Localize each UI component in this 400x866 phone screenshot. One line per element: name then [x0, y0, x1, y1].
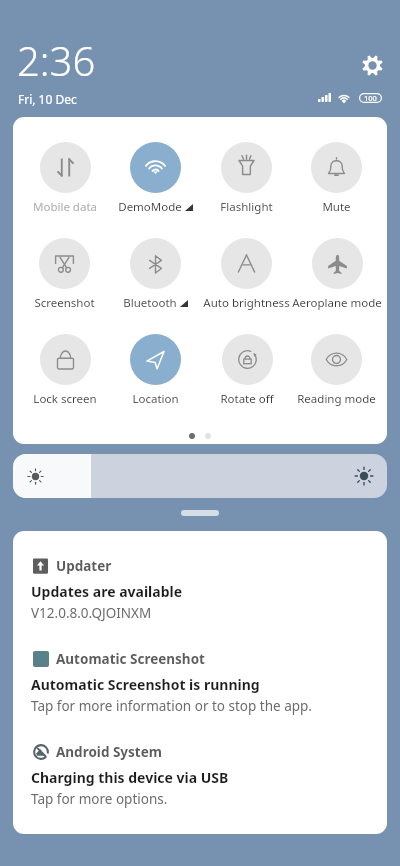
staticText: Mute: [322, 199, 351, 215]
staticText: Aeroplane mode: [292, 295, 382, 311]
button[interactable]: Mobile data: [33, 142, 97, 215]
staticText: Mobile data: [33, 199, 97, 215]
button[interactable]: Settings: [358, 51, 386, 79]
button[interactable]: DemoMode: [118, 142, 193, 215]
staticText: Bluetooth: [123, 295, 177, 311]
button[interactable]: Updater: [31, 557, 387, 622]
button[interactable]: Auto brightness: [203, 238, 290, 311]
button[interactable]: Bluetooth: [123, 238, 188, 311]
staticText: 2:36: [17, 33, 96, 87]
button[interactable]: Flashlight: [220, 142, 273, 215]
staticText: Rotate off: [220, 391, 274, 407]
staticText: Flashlight: [220, 199, 273, 215]
button[interactable]: Android System: [31, 743, 387, 808]
staticText: Android System: [56, 743, 162, 761]
staticText: 100: [364, 93, 377, 103]
button[interactable]: Location: [130, 334, 181, 407]
staticText: Lock screen: [33, 391, 97, 407]
staticText: Tap for more information or to stop the …: [31, 697, 312, 715]
staticText: Tap for more options.: [31, 790, 168, 808]
staticText: Charging this device via USB: [31, 768, 229, 787]
staticText: Automatic Screenshot is running: [31, 675, 260, 694]
button[interactable]: Lock screen: [33, 334, 97, 407]
staticText: V12.0.8.0.QJOINXM: [31, 604, 152, 622]
button[interactable]: Mute: [311, 142, 362, 215]
staticText: Updater: [56, 557, 112, 575]
button[interactable]: Automatic Screenshot: [31, 650, 387, 715]
staticText: Updates are available: [31, 582, 183, 601]
staticText: Fri, 10 Dec: [18, 91, 77, 107]
button[interactable]: Screenshot: [34, 238, 95, 311]
staticText: Automatic Screenshot: [56, 650, 205, 668]
staticText: Screenshot: [34, 295, 95, 311]
staticText: Auto brightness: [203, 295, 290, 311]
staticText: DemoMode: [118, 199, 182, 215]
staticText: Location: [132, 391, 179, 407]
button[interactable]: Reading mode: [297, 334, 376, 407]
button[interactable]: Aeroplane mode: [292, 238, 382, 311]
staticText: Reading mode: [297, 391, 376, 407]
button[interactable]: Brightness: [13, 454, 387, 498]
button[interactable]: Rotate off: [220, 334, 274, 407]
